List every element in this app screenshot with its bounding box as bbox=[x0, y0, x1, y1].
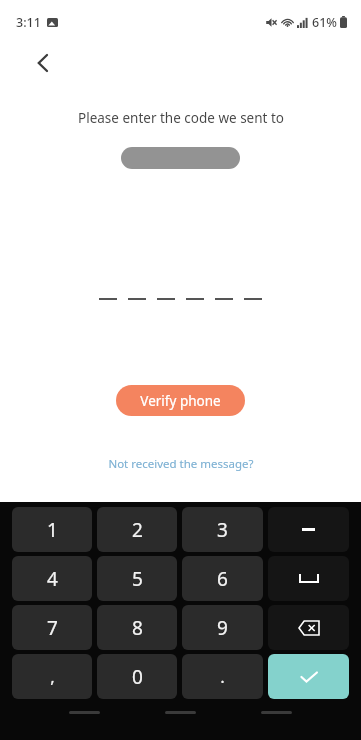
button[interactable]: 1 bbox=[12, 507, 92, 552]
button[interactable] bbox=[99, 286, 117, 300]
button[interactable]: 0 bbox=[97, 654, 177, 699]
button[interactable]: Home bbox=[165, 711, 196, 714]
button[interactable]: 4 bbox=[12, 556, 92, 601]
staticText: 5 bbox=[132, 566, 143, 592]
button[interactable] bbox=[186, 286, 204, 300]
staticText: . bbox=[220, 665, 225, 688]
button[interactable]: Not received the message? bbox=[98, 451, 264, 477]
staticText: 0 bbox=[132, 664, 143, 690]
button[interactable]: Dash bbox=[268, 507, 349, 552]
button[interactable]: 8 bbox=[97, 605, 177, 650]
staticText: Please enter the code we sent to bbox=[78, 109, 284, 127]
button[interactable]: 9 bbox=[182, 605, 263, 650]
button[interactable] bbox=[157, 286, 175, 300]
button[interactable]: Back bbox=[28, 49, 56, 77]
button[interactable]: Delete bbox=[268, 605, 349, 650]
button[interactable]: Back bbox=[261, 711, 292, 714]
staticText: 3:11 bbox=[16, 14, 41, 31]
button[interactable]: 2 bbox=[97, 507, 177, 552]
button[interactable]: . bbox=[182, 654, 263, 699]
staticText: 61% bbox=[312, 14, 337, 31]
staticText: , bbox=[50, 665, 55, 688]
staticText: 9 bbox=[217, 615, 228, 641]
button[interactable]: 7 bbox=[12, 605, 92, 650]
button[interactable]: Space bbox=[268, 556, 349, 601]
button[interactable]: 5 bbox=[97, 556, 177, 601]
staticText: Not received the message? bbox=[108, 456, 254, 472]
button[interactable] bbox=[128, 286, 146, 300]
staticText: 1 bbox=[47, 517, 58, 543]
button[interactable]: Recents bbox=[69, 711, 100, 714]
staticText: 6 bbox=[217, 566, 228, 592]
staticText: Verify phone bbox=[140, 392, 221, 410]
staticText: 2 bbox=[132, 517, 143, 543]
staticText: 7 bbox=[47, 615, 58, 641]
staticText: 3 bbox=[217, 517, 228, 543]
button[interactable] bbox=[215, 286, 233, 300]
staticText: 8 bbox=[132, 615, 143, 641]
button[interactable]: Verify phone bbox=[116, 385, 245, 416]
button[interactable]: , bbox=[12, 654, 92, 699]
button[interactable]: 3 bbox=[182, 507, 263, 552]
button[interactable] bbox=[244, 286, 262, 300]
button[interactable]: Confirm bbox=[268, 654, 349, 699]
staticText: 4 bbox=[47, 566, 58, 592]
button[interactable]: 6 bbox=[182, 556, 263, 601]
